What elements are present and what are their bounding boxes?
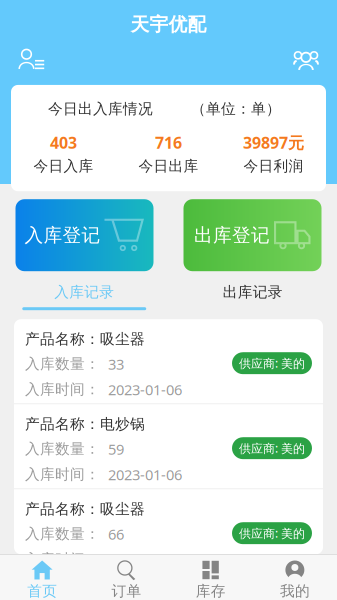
staticText: 403 — [50, 132, 77, 153]
staticText: 订单 — [111, 582, 141, 600]
button[interactable]: 首页 — [0, 555, 84, 600]
staticText: 2023-01-06 — [100, 550, 182, 569]
staticText: 入库数量： — [25, 525, 100, 543]
button[interactable]: 用户信息 — [0, 42, 53, 76]
staticText: 电炒锅 — [100, 415, 145, 433]
staticText: 66 — [100, 524, 124, 544]
staticText: 入库时间： — [25, 380, 100, 398]
button[interactable]: 库存 — [168, 555, 253, 600]
staticText: 入库数量： — [25, 355, 100, 373]
button[interactable]: 团队成员 — [285, 42, 337, 76]
staticText: 2023-01-06 — [100, 465, 182, 484]
button[interactable]: 订单 — [84, 555, 168, 600]
staticText: 今日出入库情况 — [48, 100, 153, 118]
staticText: （单位：单） — [191, 100, 281, 118]
staticText: 33 — [100, 354, 124, 374]
staticText: 今日出库 — [138, 157, 198, 175]
staticText: 入库时间： — [25, 550, 100, 568]
staticText: 入库数量： — [25, 440, 100, 458]
staticText: 出库登记 — [194, 224, 270, 247]
staticText: 产品名称： — [25, 330, 100, 348]
staticText: 入库时间： — [25, 465, 100, 483]
staticText: 吸尘器 — [100, 330, 145, 348]
staticText: 我的 — [280, 582, 310, 600]
staticText: 产品名称： — [25, 415, 100, 433]
button[interactable]: 出库登记 — [183, 199, 321, 271]
staticText: 39897元 — [243, 132, 304, 153]
button[interactable]: 出库记录 — [168, 271, 337, 310]
staticText: 今日入库 — [33, 157, 93, 175]
button[interactable]: 入库登记 — [15, 199, 153, 271]
button[interactable]: 产品名称： — [14, 404, 323, 488]
staticText: 2023-01-06 — [100, 380, 182, 399]
button[interactable]: 产品名称： — [14, 319, 323, 403]
staticText: 入库记录 — [54, 283, 114, 301]
staticText: 今日利润 — [243, 157, 303, 175]
button[interactable]: 产品名称： — [14, 489, 323, 573]
staticText: 出库记录 — [223, 283, 283, 301]
staticText: 产品名称： — [25, 500, 100, 518]
staticText: 59 — [100, 439, 124, 459]
staticText: 首页 — [27, 582, 57, 600]
button[interactable]: 入库记录 — [0, 271, 168, 310]
staticText: 库存 — [196, 582, 226, 600]
staticText: 供应商: 美的 — [239, 440, 305, 456]
staticText: 716 — [155, 132, 182, 153]
staticText: 供应商: 美的 — [239, 355, 305, 371]
button[interactable]: 我的 — [253, 555, 337, 600]
staticText: 供应商: 美的 — [239, 525, 305, 541]
staticText: 入库登记 — [24, 224, 100, 247]
staticText: 吸尘器 — [100, 500, 145, 518]
staticText: 天宇优配 — [130, 13, 206, 36]
